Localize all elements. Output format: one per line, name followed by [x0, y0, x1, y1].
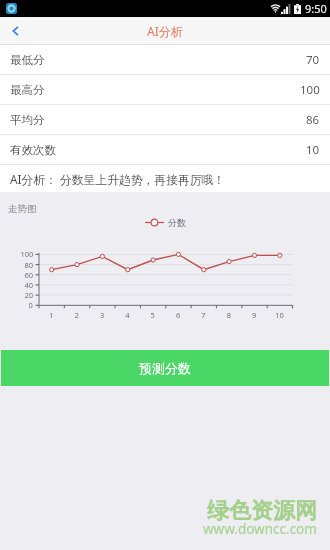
- staticText: 10: [306, 142, 320, 158]
- staticText: 绿色资源网: [207, 497, 317, 525]
- staticText: 100: [300, 82, 320, 98]
- staticText: www.downcc.com: [203, 520, 317, 538]
- button[interactable]: 最高分: [0, 75, 330, 104]
- button[interactable]: 最低分: [0, 45, 330, 74]
- staticText: 86: [306, 112, 320, 128]
- staticText: 最低分: [10, 53, 45, 67]
- staticText: 70: [306, 52, 320, 68]
- staticText: 预测分数: [139, 360, 191, 376]
- staticText: AI分析： 分数呈上升趋势，再接再厉哦！: [10, 171, 226, 187]
- staticText: AI分析: [147, 23, 183, 39]
- button[interactable]: 平均分: [0, 105, 330, 134]
- button[interactable]: 有效次数: [0, 135, 330, 164]
- staticText: 9:50: [305, 1, 327, 16]
- staticText: 有效次数: [10, 143, 56, 157]
- staticText: 分数: [168, 217, 186, 228]
- staticText: 走势图: [8, 203, 37, 215]
- button[interactable]: 预测分数: [1, 350, 329, 386]
- staticText: 最高分: [10, 83, 45, 97]
- button[interactable]: Back: [0, 17, 30, 45]
- staticText: 平均分: [10, 113, 45, 127]
